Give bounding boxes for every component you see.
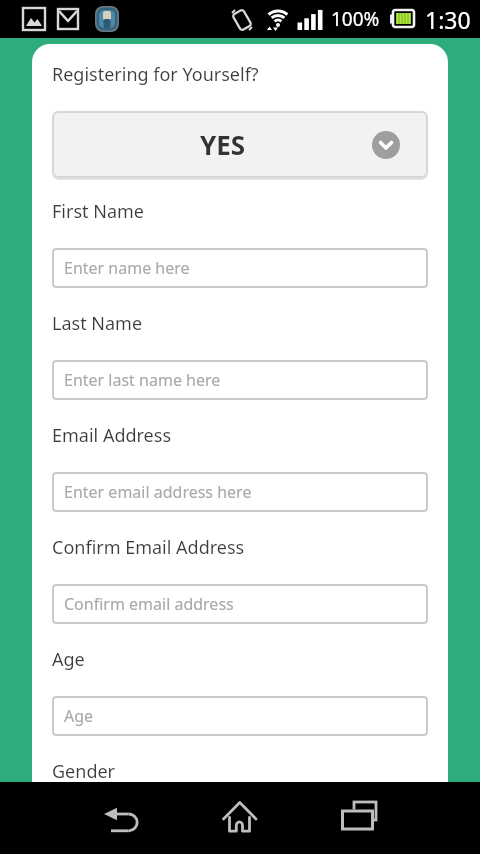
- button[interactable]: Confirm email address: [52, 584, 428, 624]
- button[interactable]: Age: [52, 696, 428, 736]
- button[interactable]: Enter email address here: [52, 472, 428, 512]
- staticText: 1:30: [425, 4, 471, 35]
- button[interactable]: [332, 792, 388, 844]
- staticText: Email Address: [52, 423, 172, 448]
- staticText: First Name: [52, 199, 144, 224]
- staticText: Last Name: [52, 311, 143, 336]
- staticText: Enter email address here: [64, 481, 252, 503]
- staticText: Confirm Email Address: [52, 535, 245, 560]
- button[interactable]: YES: [52, 111, 428, 178]
- button[interactable]: Enter name here: [52, 248, 428, 288]
- staticText: Enter last name here: [64, 369, 221, 391]
- staticText: Confirm email address: [64, 593, 234, 615]
- staticText: Registering for Yourself?: [52, 62, 259, 87]
- staticText: 100%: [331, 6, 380, 32]
- staticText: Age: [52, 647, 85, 672]
- button[interactable]: [88, 792, 152, 844]
- staticText: Age: [64, 705, 94, 727]
- button[interactable]: [212, 792, 268, 844]
- staticText: YES: [200, 127, 246, 162]
- button[interactable]: Enter last name here: [52, 360, 428, 400]
- staticText: Gender: [52, 759, 116, 782]
- staticText: Enter name here: [64, 257, 190, 279]
